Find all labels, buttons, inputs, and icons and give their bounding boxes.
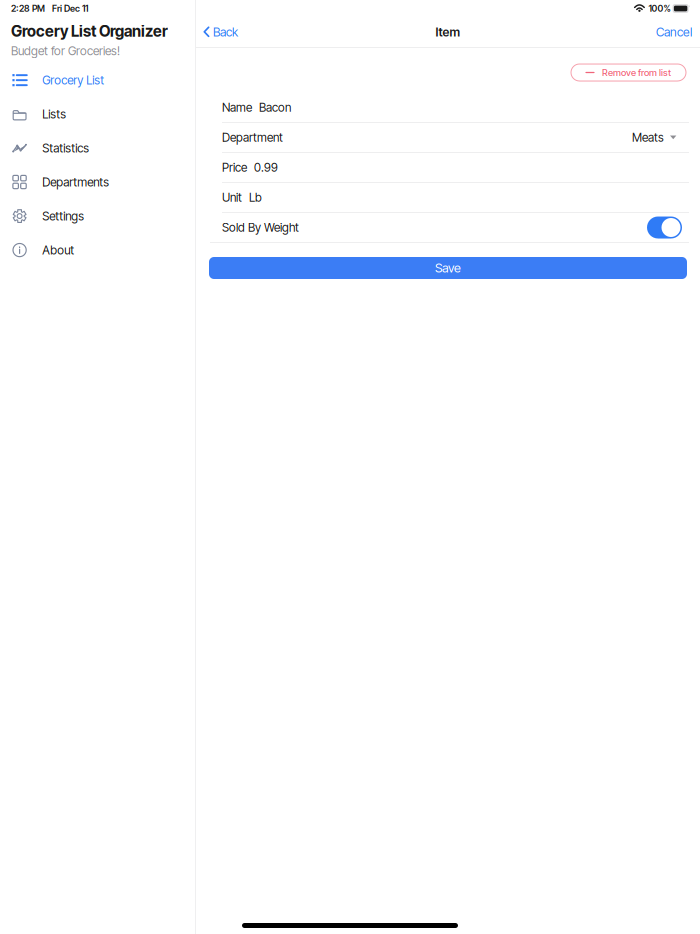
button[interactable]: Back [196,17,247,47]
staticText: Meats [632,130,664,145]
button[interactable]: Grocery List [0,63,195,97]
staticText: Sold By Weight [222,220,299,235]
staticText: Department [222,130,283,145]
button[interactable]: About [0,233,195,267]
button[interactable]: Settings [0,199,195,233]
staticText: Back [213,25,238,39]
staticText: 2:28 PM [11,3,45,14]
staticText: Budget for Groceries! [11,44,120,58]
staticText: Unit [222,190,242,205]
button[interactable]: Save [209,257,687,279]
staticText: Lists [42,107,66,121]
staticText: 100% [649,3,671,14]
staticText: Lb [249,190,262,205]
staticText: Remove from list [602,67,671,78]
staticText: Statistics [42,141,89,155]
staticText: 0.99 [254,160,278,175]
button[interactable]: Remove from list [571,64,686,81]
staticText: Price [222,160,247,175]
staticText: Grocery List [42,73,104,87]
button[interactable]: Meats [632,130,677,145]
staticText: Bacon [259,100,291,115]
staticText: Departments [42,175,109,189]
staticText: Save [435,260,461,276]
button[interactable]: Statistics [0,131,195,165]
staticText: Settings [42,209,84,223]
staticText: About [42,243,74,257]
staticText: Grocery List Organizer [11,22,168,41]
staticText: Cancel [656,25,692,39]
button[interactable]: Sold By Weight [647,216,682,238]
staticText: Item [435,25,460,39]
staticText: Fri Dec 11 [52,3,88,14]
button[interactable]: Departments [0,165,195,199]
button[interactable]: Lists [0,97,195,131]
button[interactable]: Cancel [648,17,700,47]
staticText: Name [222,100,252,115]
